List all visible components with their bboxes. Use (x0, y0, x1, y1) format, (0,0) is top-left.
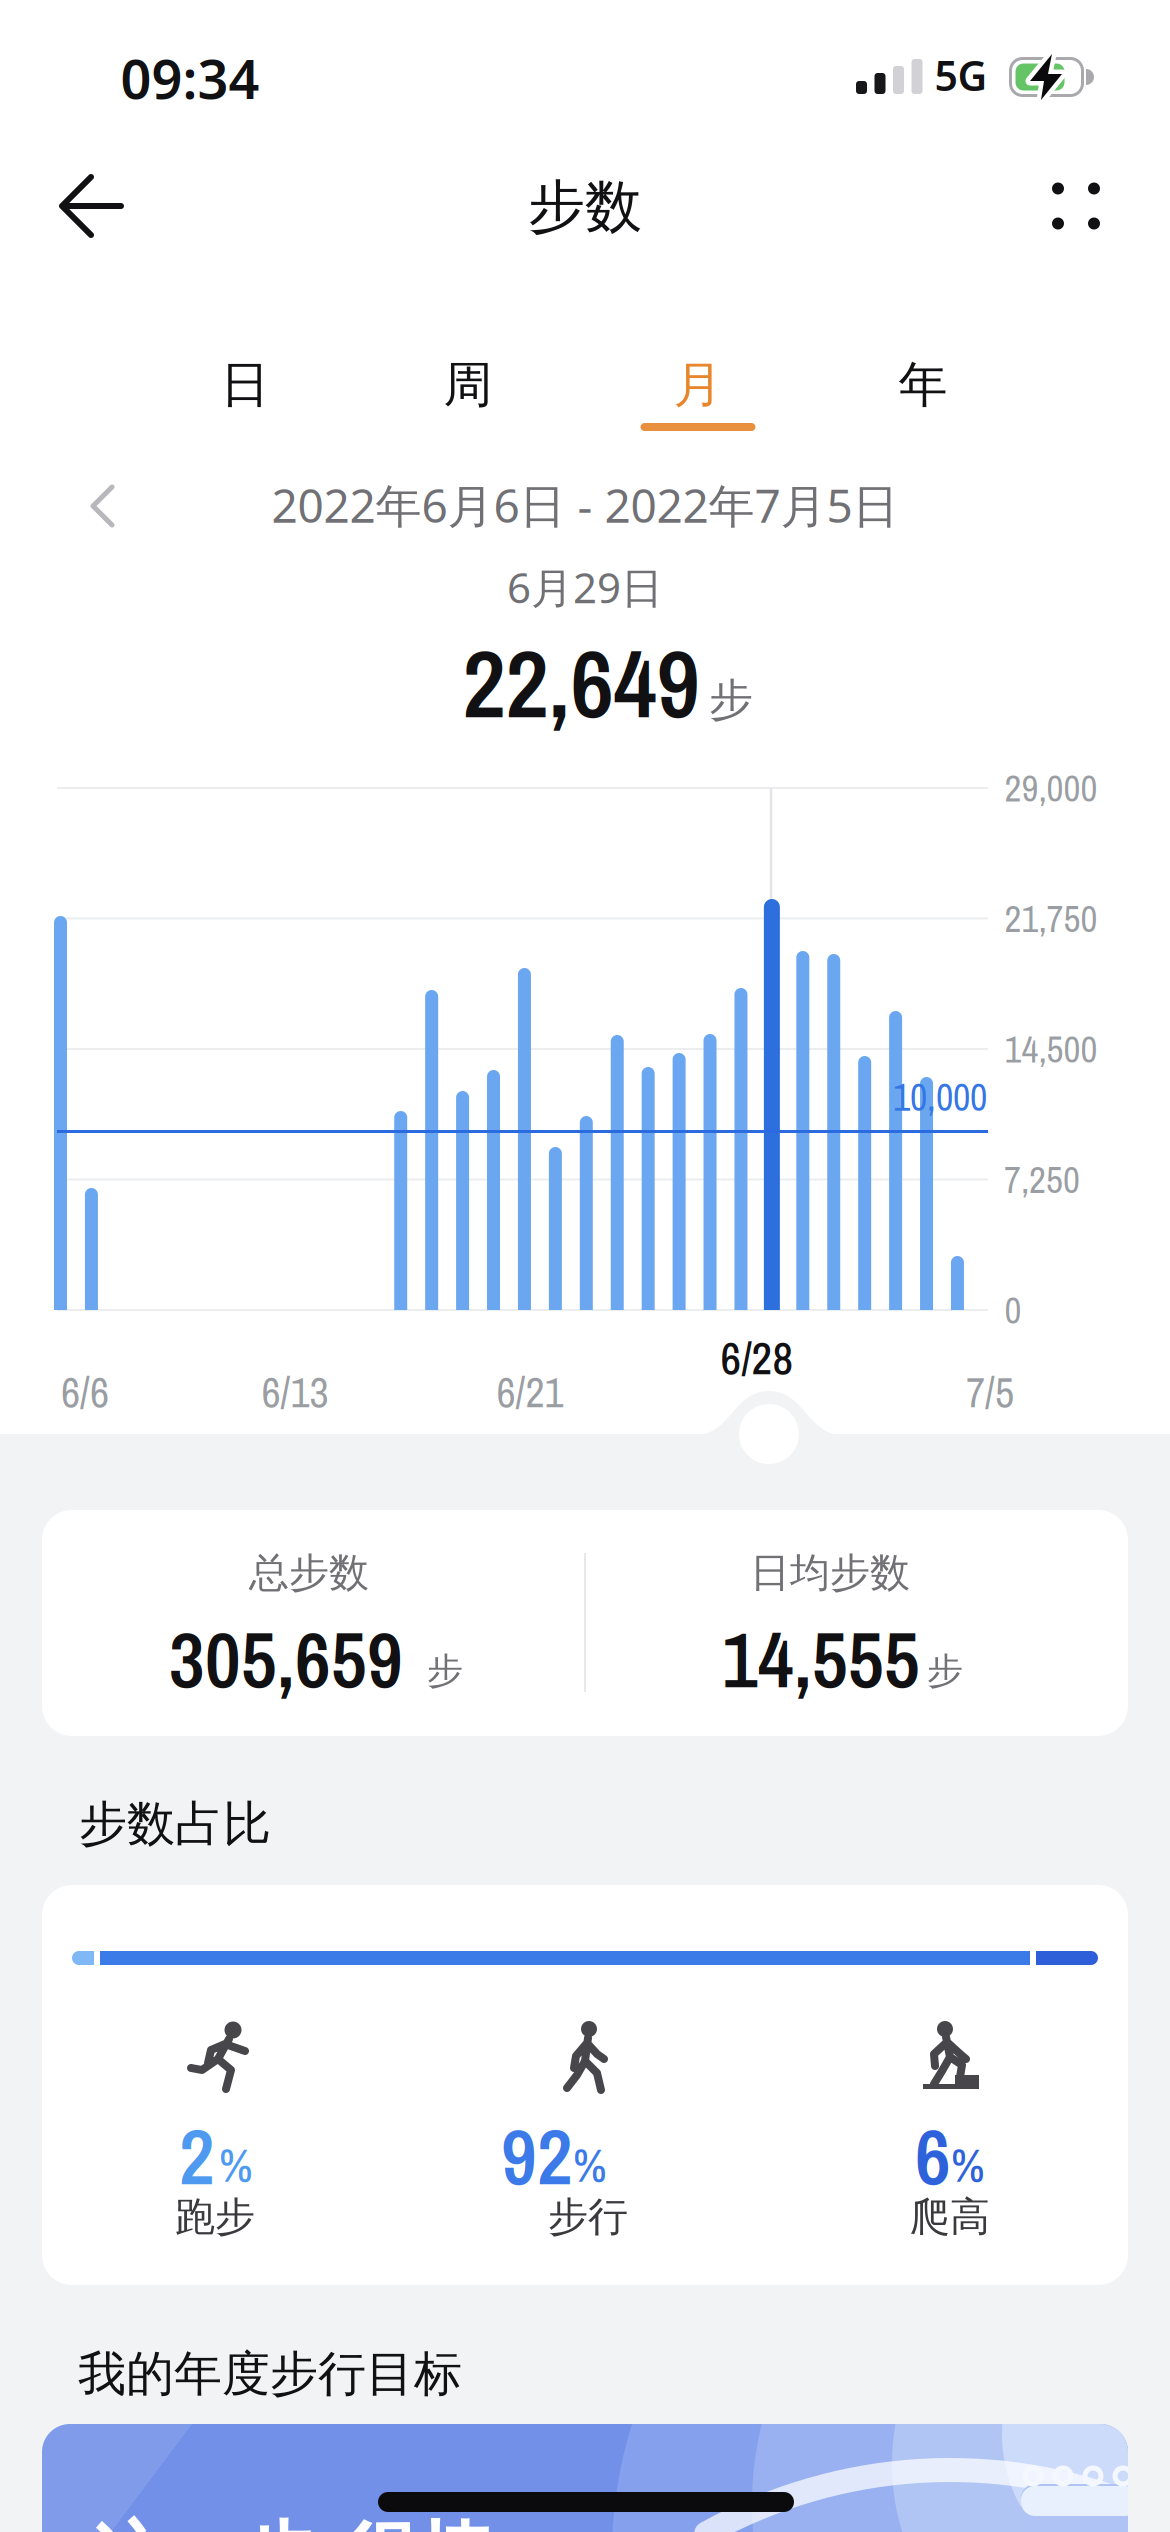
staticText: 年 (898, 354, 947, 416)
staticText: 14,555 (722, 1606, 920, 1712)
staticText: 22,649 (462, 619, 699, 747)
button[interactable]: 周 (388, 340, 548, 430)
button[interactable]: 年 (843, 340, 1003, 430)
staticText: 6/28 (720, 1328, 793, 1388)
staticText: 月 (673, 354, 722, 416)
staticText: % (573, 2134, 607, 2196)
staticText: 7/5 (966, 1364, 1014, 1420)
staticText: 6/6 (61, 1364, 109, 1420)
staticText: 步 (709, 672, 753, 728)
staticText: 6 (915, 2103, 951, 2209)
staticText: % (219, 2134, 253, 2196)
staticText: 这一步 很棒 (90, 2510, 493, 2532)
staticText: 2 (179, 2103, 215, 2209)
button[interactable]: Annual walking goal (42, 2424, 1128, 2532)
staticText: 步 (927, 1648, 963, 1694)
staticText: 周 (443, 354, 492, 416)
button[interactable]: Previous period (90, 485, 116, 527)
staticText: 29,000 (1004, 763, 1097, 813)
button[interactable]: 日 (165, 340, 325, 430)
staticText: 14,500 (1004, 1024, 1097, 1074)
staticText: 0 (1004, 1285, 1021, 1335)
button[interactable]: More options (1050, 180, 1102, 231)
staticText: 5G (934, 47, 987, 103)
staticText: 日均步数 (750, 1548, 910, 1598)
staticText: 步 (427, 1648, 463, 1694)
staticText: 2022年6月6日 - 2022年7月5日 (271, 474, 898, 536)
staticText: 6/21 (496, 1364, 563, 1420)
staticText: 爬高 (910, 2192, 990, 2242)
button[interactable]: 月 (618, 340, 778, 430)
staticText: 日 (220, 354, 269, 416)
staticText: % (951, 2134, 985, 2196)
button[interactable]: Back (60, 176, 122, 238)
staticText: 6/13 (261, 1364, 328, 1420)
button[interactable]: Drag handle (739, 1404, 799, 1464)
staticText: 7,250 (1004, 1155, 1080, 1204)
staticText: 92 (501, 2103, 573, 2209)
staticText: 305,659 (169, 1606, 403, 1712)
staticText: 步数 (528, 171, 642, 243)
staticText: 21,750 (1004, 894, 1097, 943)
staticText: 6月29日 (507, 558, 663, 616)
staticText: 10,000 (893, 1071, 987, 1123)
staticText: 总步数 (249, 1548, 369, 1598)
staticText: 09:34 (120, 41, 259, 115)
staticText: 跑步 (175, 2192, 255, 2242)
staticText: 步行 (548, 2192, 628, 2242)
staticText: 步数占比 (79, 1794, 271, 1854)
staticText: 我的年度步行目标 (78, 2344, 462, 2404)
